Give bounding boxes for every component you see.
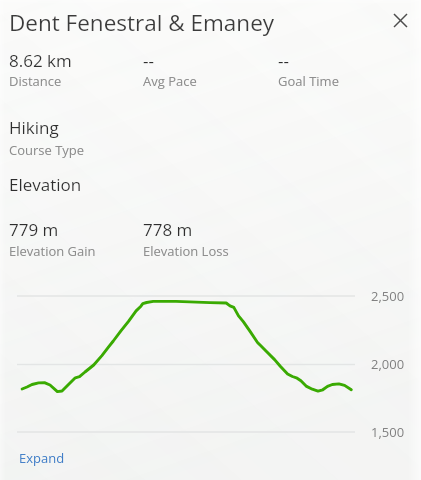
staticText: Elevation Loss	[143, 242, 229, 260]
staticText: Elevation Gain	[9, 242, 96, 260]
button[interactable]: Close	[384, 4, 417, 37]
staticText: Dent Fenestral & Emaney	[9, 7, 275, 38]
staticText: 1,500	[371, 423, 405, 441]
staticText: 8.62 km	[9, 49, 72, 72]
staticText: --	[143, 49, 154, 72]
staticText: 779 m	[9, 218, 59, 241]
staticText: 2,500	[371, 287, 405, 305]
staticText: Course Type	[9, 141, 85, 159]
staticText: 778 m	[143, 218, 193, 241]
staticText: Distance	[9, 72, 62, 90]
staticText: Hiking	[9, 116, 59, 139]
button[interactable]: Expand	[9, 444, 77, 474]
button[interactable]: Dent Fenestral & Emaney	[0, 5, 285, 40]
staticText: Elevation	[9, 173, 82, 196]
staticText: Goal Time	[278, 72, 339, 90]
staticText: Avg Pace	[143, 72, 197, 90]
staticText: 2,000	[371, 355, 405, 373]
staticText: Expand	[19, 449, 65, 467]
staticText: --	[278, 49, 289, 72]
